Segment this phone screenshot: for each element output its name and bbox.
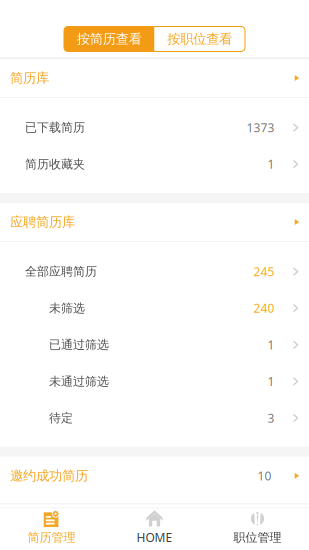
button[interactable]: 全部应聘简历 — [0, 253, 309, 290]
staticText: 应聘简历库 — [10, 214, 75, 230]
button[interactable]: 待定 — [0, 400, 309, 436]
button[interactable]: 未筛选 — [0, 290, 309, 326]
staticText: 按职位查看 — [167, 31, 232, 47]
button[interactable]: HOME — [103, 508, 206, 550]
staticText: 邀约成功简历 — [10, 468, 88, 484]
staticText: 全部应聘简历 — [25, 264, 97, 279]
staticText: 1 — [267, 337, 274, 353]
staticText: 10 — [257, 468, 271, 484]
button[interactable]: 简历库 — [0, 59, 309, 97]
staticText: 1 — [267, 373, 274, 389]
button[interactable]: 职位管理 — [206, 508, 309, 550]
button[interactable]: 已通过筛选 — [0, 326, 309, 363]
staticText: HOME — [136, 529, 172, 545]
button[interactable]: 按职位查看 — [154, 26, 245, 51]
staticText: 3 — [267, 410, 274, 426]
staticText: 未筛选 — [49, 301, 85, 315]
staticText: 简历收藏夹 — [25, 157, 85, 171]
staticText: 245 — [253, 264, 274, 279]
staticText: 1 — [267, 156, 274, 172]
staticText: 已下载简历 — [25, 120, 85, 135]
button[interactable]: 应聘简历库 — [0, 203, 309, 241]
staticText: 职位管理 — [233, 530, 281, 545]
staticText: 待定 — [49, 411, 73, 425]
staticText: 已通过筛选 — [49, 337, 109, 352]
button[interactable]: 简历管理 — [0, 508, 103, 550]
staticText: 简历库 — [10, 70, 49, 86]
staticText: 按简历查看 — [77, 31, 142, 47]
button[interactable]: 邀约成功简历 — [0, 457, 309, 495]
button[interactable]: 简历收藏夹 — [0, 146, 309, 182]
staticText: 240 — [253, 300, 274, 316]
staticText: 简历管理 — [27, 530, 75, 545]
button[interactable]: 未通过筛选 — [0, 363, 309, 400]
staticText: 1373 — [246, 120, 274, 135]
button[interactable]: 已下载简历 — [0, 109, 309, 146]
button[interactable]: 按简历查看 — [64, 26, 154, 51]
staticText: 未通过筛选 — [49, 374, 109, 389]
